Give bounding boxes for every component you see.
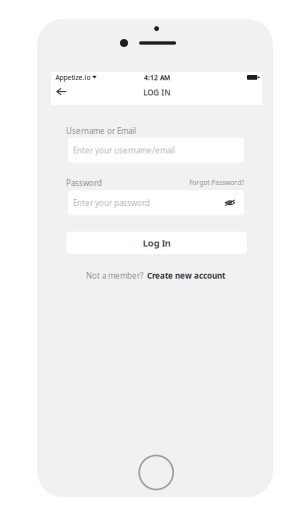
staticText: Enter your username/email bbox=[73, 145, 175, 156]
staticText: Forgot Password? bbox=[189, 178, 244, 187]
staticText: Password bbox=[66, 177, 102, 188]
staticText: Log In bbox=[143, 237, 171, 249]
staticText: Username or Email bbox=[66, 125, 136, 136]
button[interactable]: Show password bbox=[222, 196, 238, 210]
button[interactable]: Log In bbox=[66, 232, 247, 254]
button[interactable]: Enter your username/email bbox=[68, 138, 244, 163]
staticText: Create new account bbox=[147, 270, 225, 281]
staticText: 4:12 AM bbox=[144, 73, 170, 82]
staticText: Enter your password bbox=[73, 197, 150, 208]
staticText: LOG IN bbox=[143, 87, 170, 98]
staticText: Appetize.io bbox=[55, 73, 90, 82]
staticText: Not a member? bbox=[86, 270, 143, 281]
button[interactable]: Create new account bbox=[147, 270, 225, 281]
button[interactable]: Forgot Password? bbox=[188, 177, 246, 187]
button[interactable]: Back bbox=[51, 82, 71, 101]
button[interactable]: Enter your password bbox=[68, 190, 244, 215]
